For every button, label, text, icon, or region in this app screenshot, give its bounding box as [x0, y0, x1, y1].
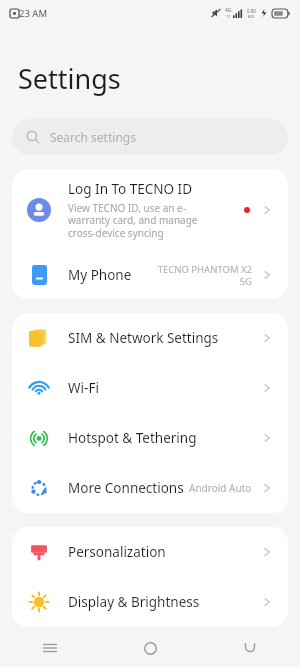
button[interactable]: Search settings	[12, 119, 288, 155]
staticText: B/S	[248, 14, 255, 19]
staticText: Android Auto	[189, 481, 252, 495]
button[interactable]: Back	[200, 629, 300, 667]
staticText: Search settings	[50, 129, 136, 145]
staticText: Hotspot & Tethering	[68, 429, 260, 447]
button[interactable]: Wi-Fi	[12, 363, 288, 413]
button[interactable]: Recents	[0, 629, 100, 667]
button[interactable]: Log In To TECNO ID	[12, 169, 288, 251]
button[interactable]: My Phone	[12, 251, 288, 299]
staticText: My Phone	[68, 266, 156, 284]
button[interactable]: More Connections	[12, 463, 288, 513]
staticText: 23 AM	[19, 7, 48, 20]
staticText: View TECNO ID, use an e-warranty card, a…	[68, 201, 218, 240]
staticText: Settings	[18, 60, 121, 97]
staticText: 0.00	[247, 8, 256, 14]
button[interactable]: Home	[100, 629, 200, 667]
staticText: SIM & Network Settings	[68, 329, 260, 347]
staticText: Wi-Fi	[68, 379, 260, 397]
staticText: More Connections	[68, 479, 189, 497]
staticText: Personalization	[68, 543, 260, 561]
button[interactable]: SIM & Network Settings	[12, 313, 288, 363]
button[interactable]: Hotspot & Tethering	[12, 413, 288, 463]
button[interactable]: Display & Brightness	[12, 577, 288, 627]
staticText: TECNO PHANTOM X2 5G	[156, 263, 252, 288]
staticText: 11	[226, 14, 231, 19]
staticText: 4G	[225, 7, 232, 14]
staticText: Log In To TECNO ID	[68, 180, 193, 198]
staticText: Display & Brightness	[68, 593, 260, 611]
button[interactable]: Personalization	[12, 527, 288, 577]
